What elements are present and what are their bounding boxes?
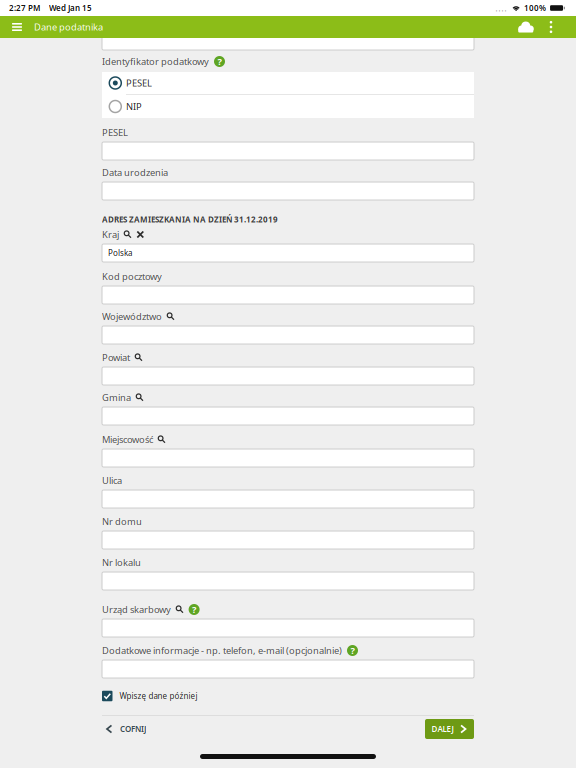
- staticText: ?: [350, 644, 354, 657]
- staticText: Kraj: [102, 228, 119, 241]
- staticText: ?: [217, 55, 221, 68]
- staticText: PESEL: [126, 77, 152, 89]
- staticText: 100%: [524, 3, 546, 13]
- staticText: Dane podatnika: [34, 21, 103, 33]
- staticText: Miejscowość: [102, 433, 153, 446]
- staticText: Wed Jan 15: [49, 3, 92, 13]
- staticText: Województwo: [102, 310, 162, 323]
- staticText: Urząd skarbowy: [102, 603, 171, 616]
- staticText: Dodatkowe informacje - np. telefon, e-ma…: [102, 644, 342, 657]
- button[interactable]: Sync to cloud: [512, 16, 540, 38]
- staticText: Nr lokalu: [102, 556, 141, 569]
- staticText: Data urodzenia: [102, 166, 168, 179]
- staticText: PESEL: [102, 126, 128, 139]
- button[interactable]: Menu: [12, 16, 22, 38]
- staticText: Nr domu: [102, 515, 142, 528]
- staticText: Gmina: [102, 391, 131, 404]
- button[interactable]: Wpiszę dane później: [102, 690, 474, 702]
- staticText: COFNIJ: [120, 724, 146, 734]
- staticText: Wpiszę dane później: [119, 691, 197, 701]
- staticText: NIP: [126, 100, 142, 113]
- staticText: Ulica: [102, 474, 122, 487]
- button[interactable]: More options: [540, 16, 562, 38]
- button[interactable]: COFNIJ: [102, 719, 172, 739]
- button[interactable]: DALEJ: [425, 719, 474, 739]
- staticText: ....: [495, 2, 507, 14]
- staticText: Powiat: [102, 351, 130, 364]
- staticText: DALEJ: [431, 724, 453, 734]
- button[interactable]: PESEL: [102, 72, 474, 95]
- button[interactable]: NIP: [102, 95, 474, 118]
- staticText: Identyfikator podatkowy: [102, 55, 209, 68]
- staticText: Kod pocztowy: [102, 270, 162, 283]
- staticText: Polska: [108, 248, 132, 258]
- staticText: ?: [192, 603, 196, 616]
- staticText: ADRES ZAMIESZKANIA NA DZIEŃ 31.12.2019: [102, 214, 278, 225]
- staticText: 2:27 PM: [9, 3, 40, 13]
